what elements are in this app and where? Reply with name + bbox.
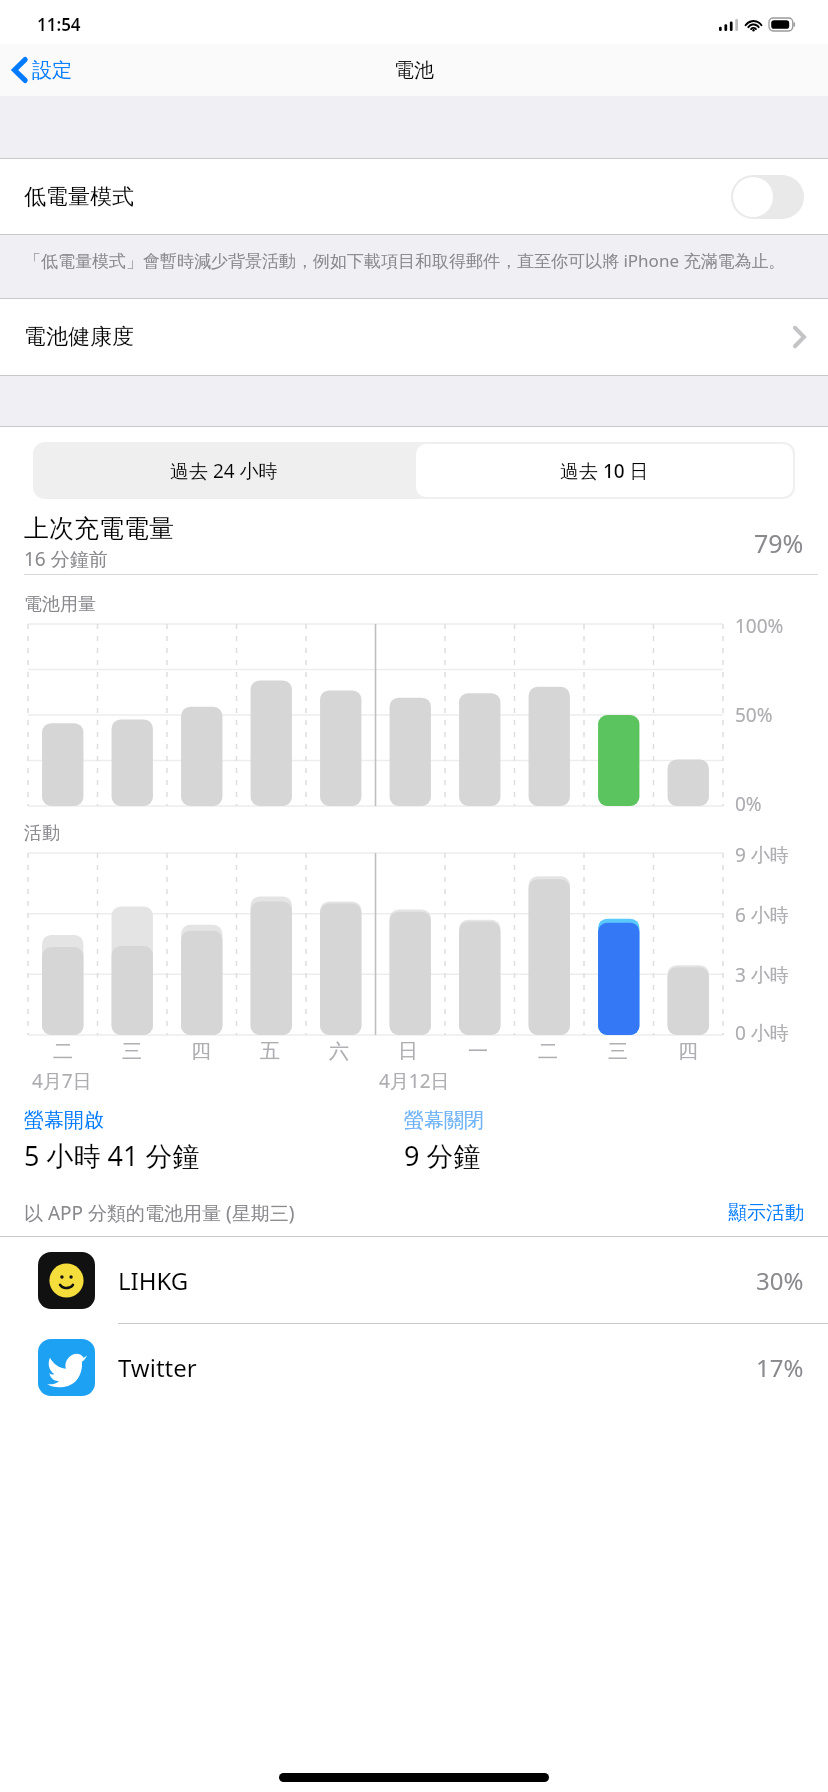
staticText: 100% — [735, 613, 784, 639]
button[interactable]: LIHKG — [0, 1237, 828, 1323]
staticText: 5 小時 41 分鐘 — [24, 1137, 200, 1174]
staticText: 4月12日 — [379, 1068, 450, 1094]
staticText: 低電量模式 — [24, 183, 134, 211]
staticText: 以 APP 分類的電池用量 (星期三) — [24, 1200, 295, 1226]
staticText: Twitter — [118, 1351, 197, 1384]
staticText: 過去 10 日 — [560, 458, 649, 484]
staticText: 四 — [678, 1039, 698, 1064]
staticText: 30% — [756, 1264, 804, 1297]
staticText: 3 小時 — [735, 962, 789, 988]
staticText: 4月7日 — [32, 1068, 92, 1094]
staticText: 17% — [756, 1351, 804, 1384]
staticText: 50% — [735, 702, 773, 728]
button[interactable]: 過去 10 日 — [416, 444, 793, 497]
staticText: 11:54 — [37, 13, 81, 36]
button[interactable]: 設定 — [0, 51, 82, 89]
button[interactable]: 低電量模式開關 — [731, 175, 804, 219]
staticText: 6 小時 — [735, 902, 789, 928]
staticText: 「低電量模式」會暫時減少背景活動，例如下載項目和取得郵件，直至你可以將 iPho… — [24, 249, 786, 272]
staticText: 電池健康度 — [24, 323, 134, 351]
staticText: 二 — [538, 1039, 558, 1064]
button[interactable]: 過去 24 小時 — [33, 442, 414, 499]
button[interactable]: Twitter — [0, 1324, 828, 1410]
button[interactable]: 顯示活動 — [728, 1201, 804, 1225]
staticText: 9 小時 — [735, 842, 789, 868]
button[interactable]: 低電量模式 — [0, 159, 828, 234]
staticText: 一 — [468, 1039, 488, 1064]
staticText: 活動 — [24, 822, 60, 845]
staticText: 電池用量 — [24, 593, 96, 616]
staticText: 五 — [260, 1039, 280, 1064]
staticText: 日 — [398, 1039, 418, 1064]
staticText: 過去 24 小時 — [170, 458, 278, 484]
staticText: 16 分鐘前 — [24, 546, 108, 572]
staticText: 9 分鐘 — [404, 1137, 481, 1174]
staticText: LIHKG — [118, 1264, 189, 1297]
staticText: 二 — [53, 1039, 73, 1064]
staticText: 六 — [329, 1039, 349, 1064]
staticText: 螢幕關閉 — [404, 1108, 484, 1133]
staticText: 四 — [191, 1039, 211, 1064]
button[interactable]: 電池健康度 — [0, 299, 828, 375]
staticText: 0% — [735, 791, 762, 817]
staticText: 螢幕開啟 — [24, 1108, 104, 1133]
staticText: 顯示活動 — [728, 1201, 804, 1225]
staticText: 三 — [608, 1039, 628, 1064]
staticText: 電池 — [394, 58, 434, 83]
staticText: 79% — [754, 526, 804, 560]
staticText: 0 小時 — [735, 1020, 789, 1046]
staticText: 三 — [122, 1039, 142, 1064]
staticText: 上次充電電量 — [24, 513, 174, 544]
staticText: 設定 — [32, 58, 72, 83]
